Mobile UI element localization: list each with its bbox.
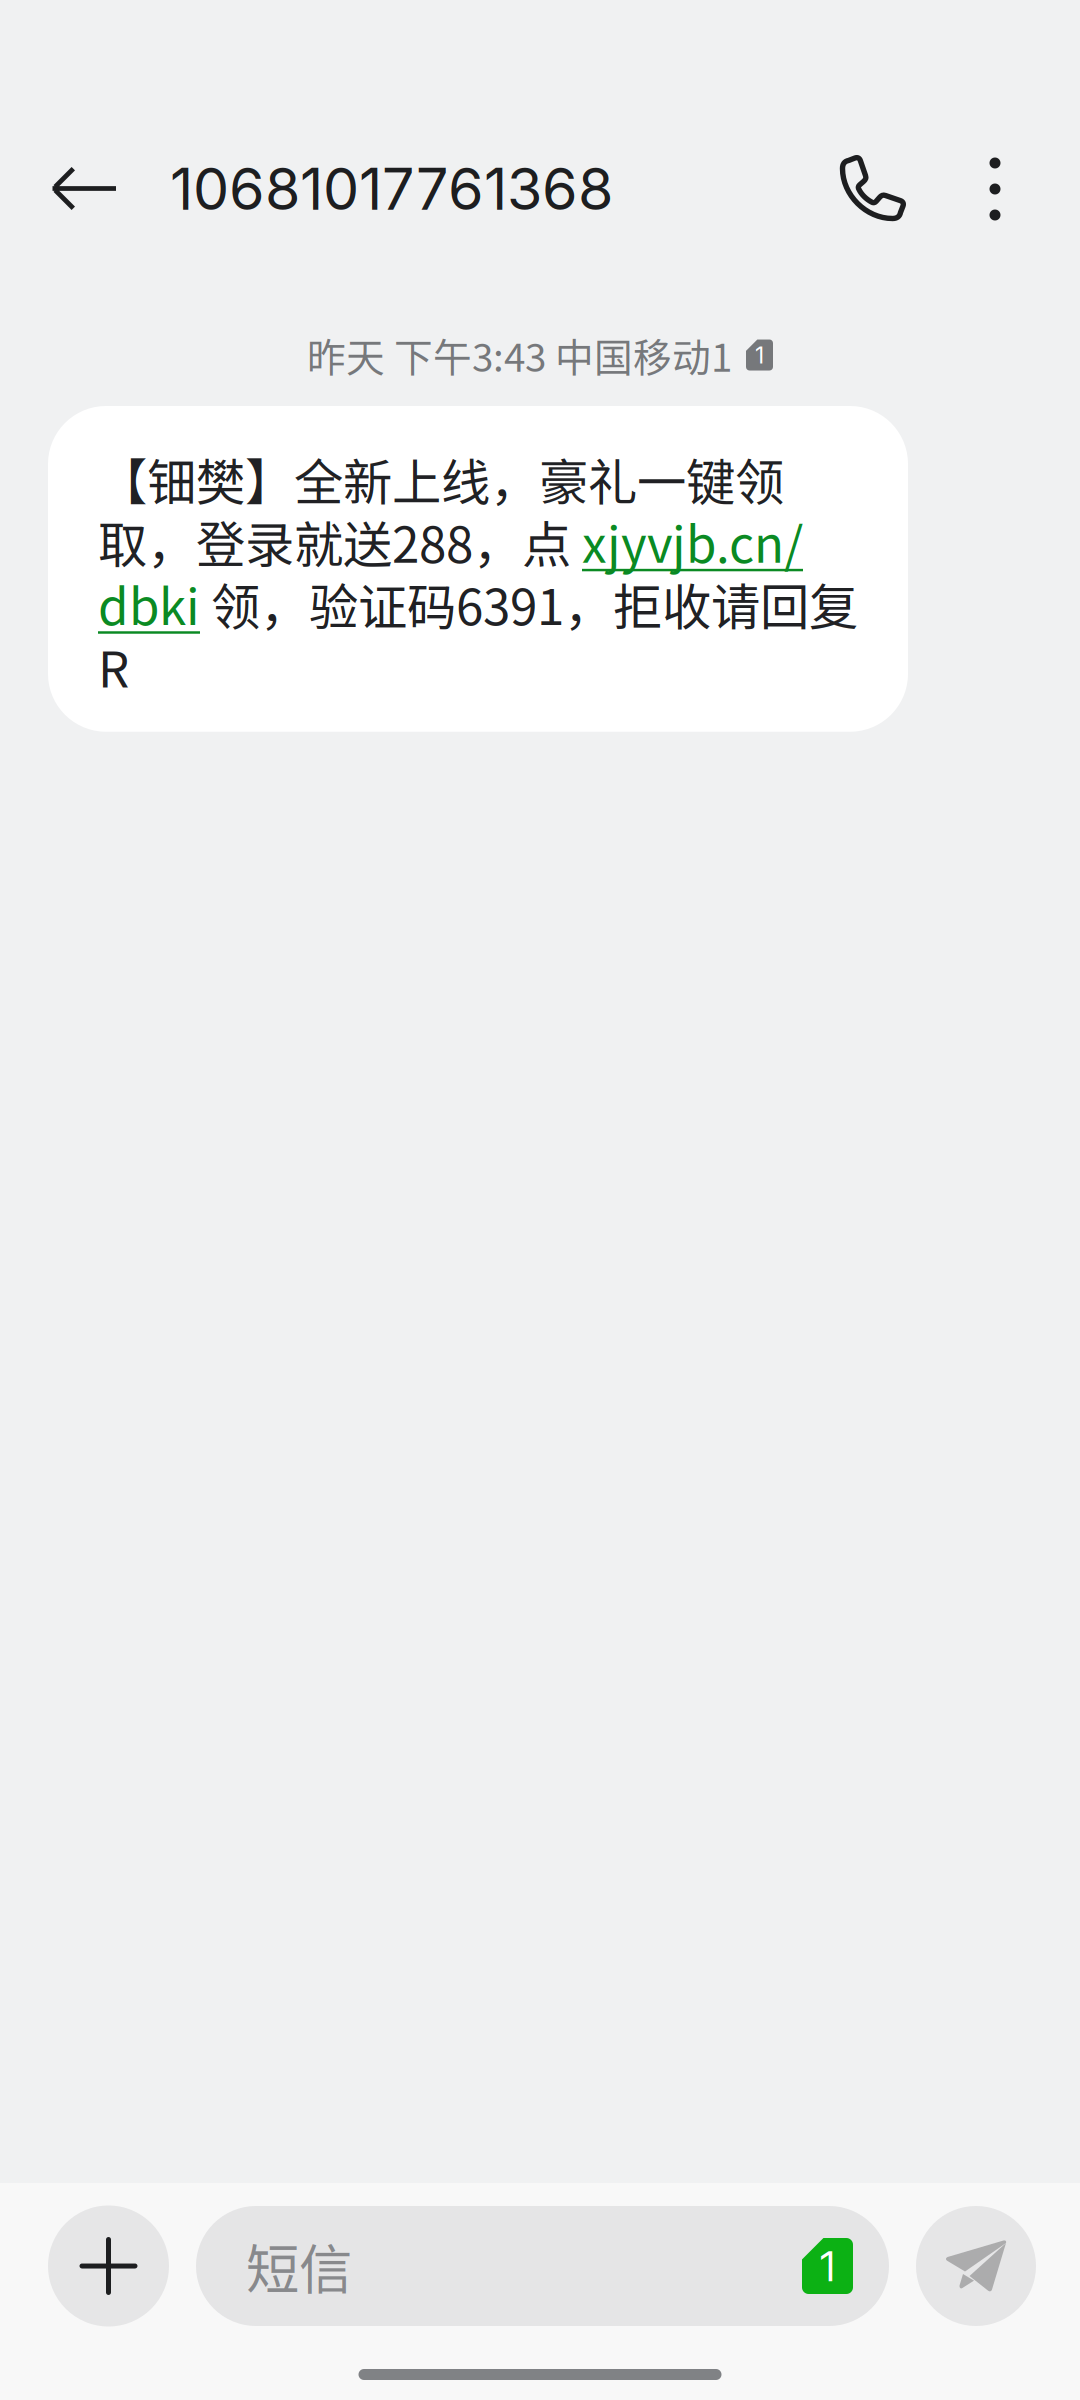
staticText: 10681017761368 xyxy=(170,154,613,224)
button[interactable]: Back xyxy=(25,114,143,264)
button[interactable]: 短信 xyxy=(196,2206,889,2326)
staticText: 1 xyxy=(755,341,764,369)
button[interactable]: Send xyxy=(916,2206,1036,2326)
staticText: 1 xyxy=(820,2241,835,2291)
staticText: 【钿樊】全新上线，豪礼一键领取，登录就送288，点 xjyvjb.cn/dbki… xyxy=(98,443,858,702)
staticText: 短信 xyxy=(246,2227,352,2305)
button[interactable]: 10681017761368 xyxy=(143,114,613,264)
button[interactable]: More options xyxy=(934,114,1056,264)
button[interactable]: Add attachment xyxy=(48,2205,169,2326)
staticText: 昨天 下午3:43 中国移动1 xyxy=(307,327,732,383)
button[interactable]: Call xyxy=(806,114,934,264)
